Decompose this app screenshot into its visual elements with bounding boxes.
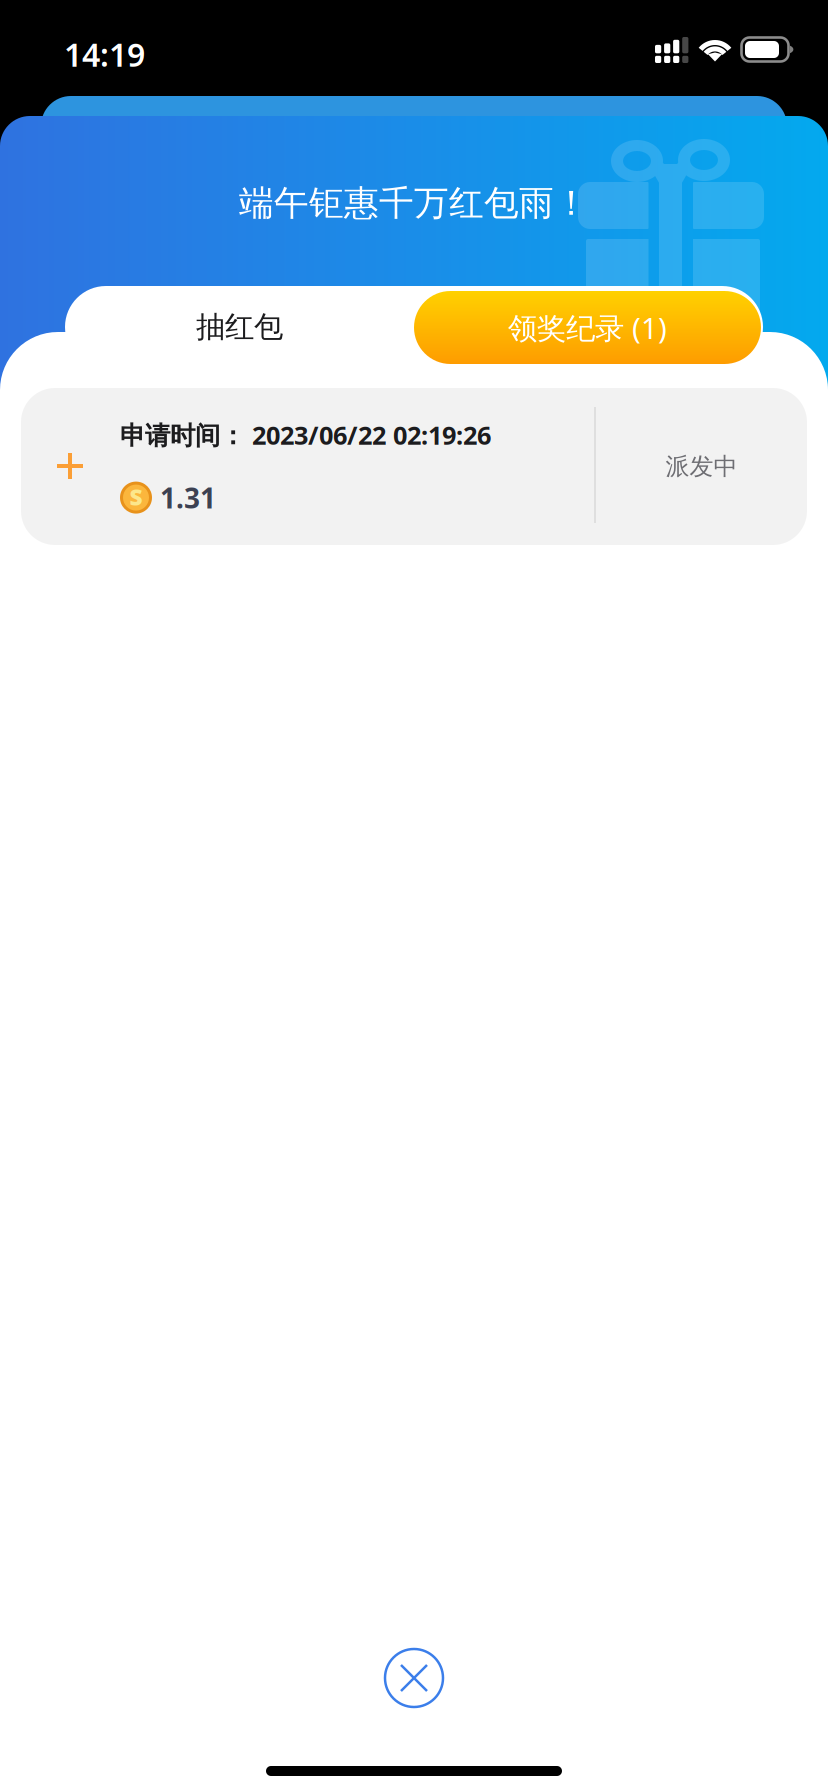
staticText: 派发中 — [665, 452, 737, 481]
button[interactable]: Close — [385, 1649, 443, 1707]
staticText: 抽红包 — [196, 309, 283, 345]
button[interactable]: 领奖纪录 (1) — [414, 291, 761, 364]
staticText: 1.31 — [160, 479, 216, 516]
staticText: S — [129, 481, 142, 512]
staticText: 领奖纪录 (1) — [508, 308, 667, 347]
button[interactable]: 抽红包 — [65, 286, 414, 368]
staticText: 端午钜惠千万红包雨！ — [239, 182, 589, 225]
staticText: 14:19 — [64, 33, 145, 75]
staticText: 申请时间： 2023/06/22 02:19:26 — [120, 418, 491, 452]
